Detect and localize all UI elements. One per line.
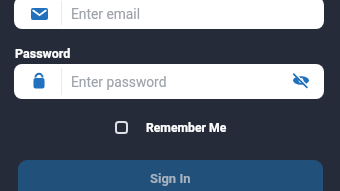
button[interactable]: Enter password — [14, 64, 324, 99]
staticText: Sign In — [150, 171, 191, 186]
staticText: Enter password — [71, 74, 167, 90]
staticText: Password — [15, 46, 71, 61]
button[interactable] — [292, 71, 310, 89]
staticText: Remember Me — [146, 121, 227, 134]
button[interactable]: Remember Me — [115, 121, 227, 135]
button[interactable]: Sign In — [18, 160, 323, 191]
button[interactable]: Enter email — [14, 0, 324, 29]
staticText: Enter email — [71, 6, 141, 22]
